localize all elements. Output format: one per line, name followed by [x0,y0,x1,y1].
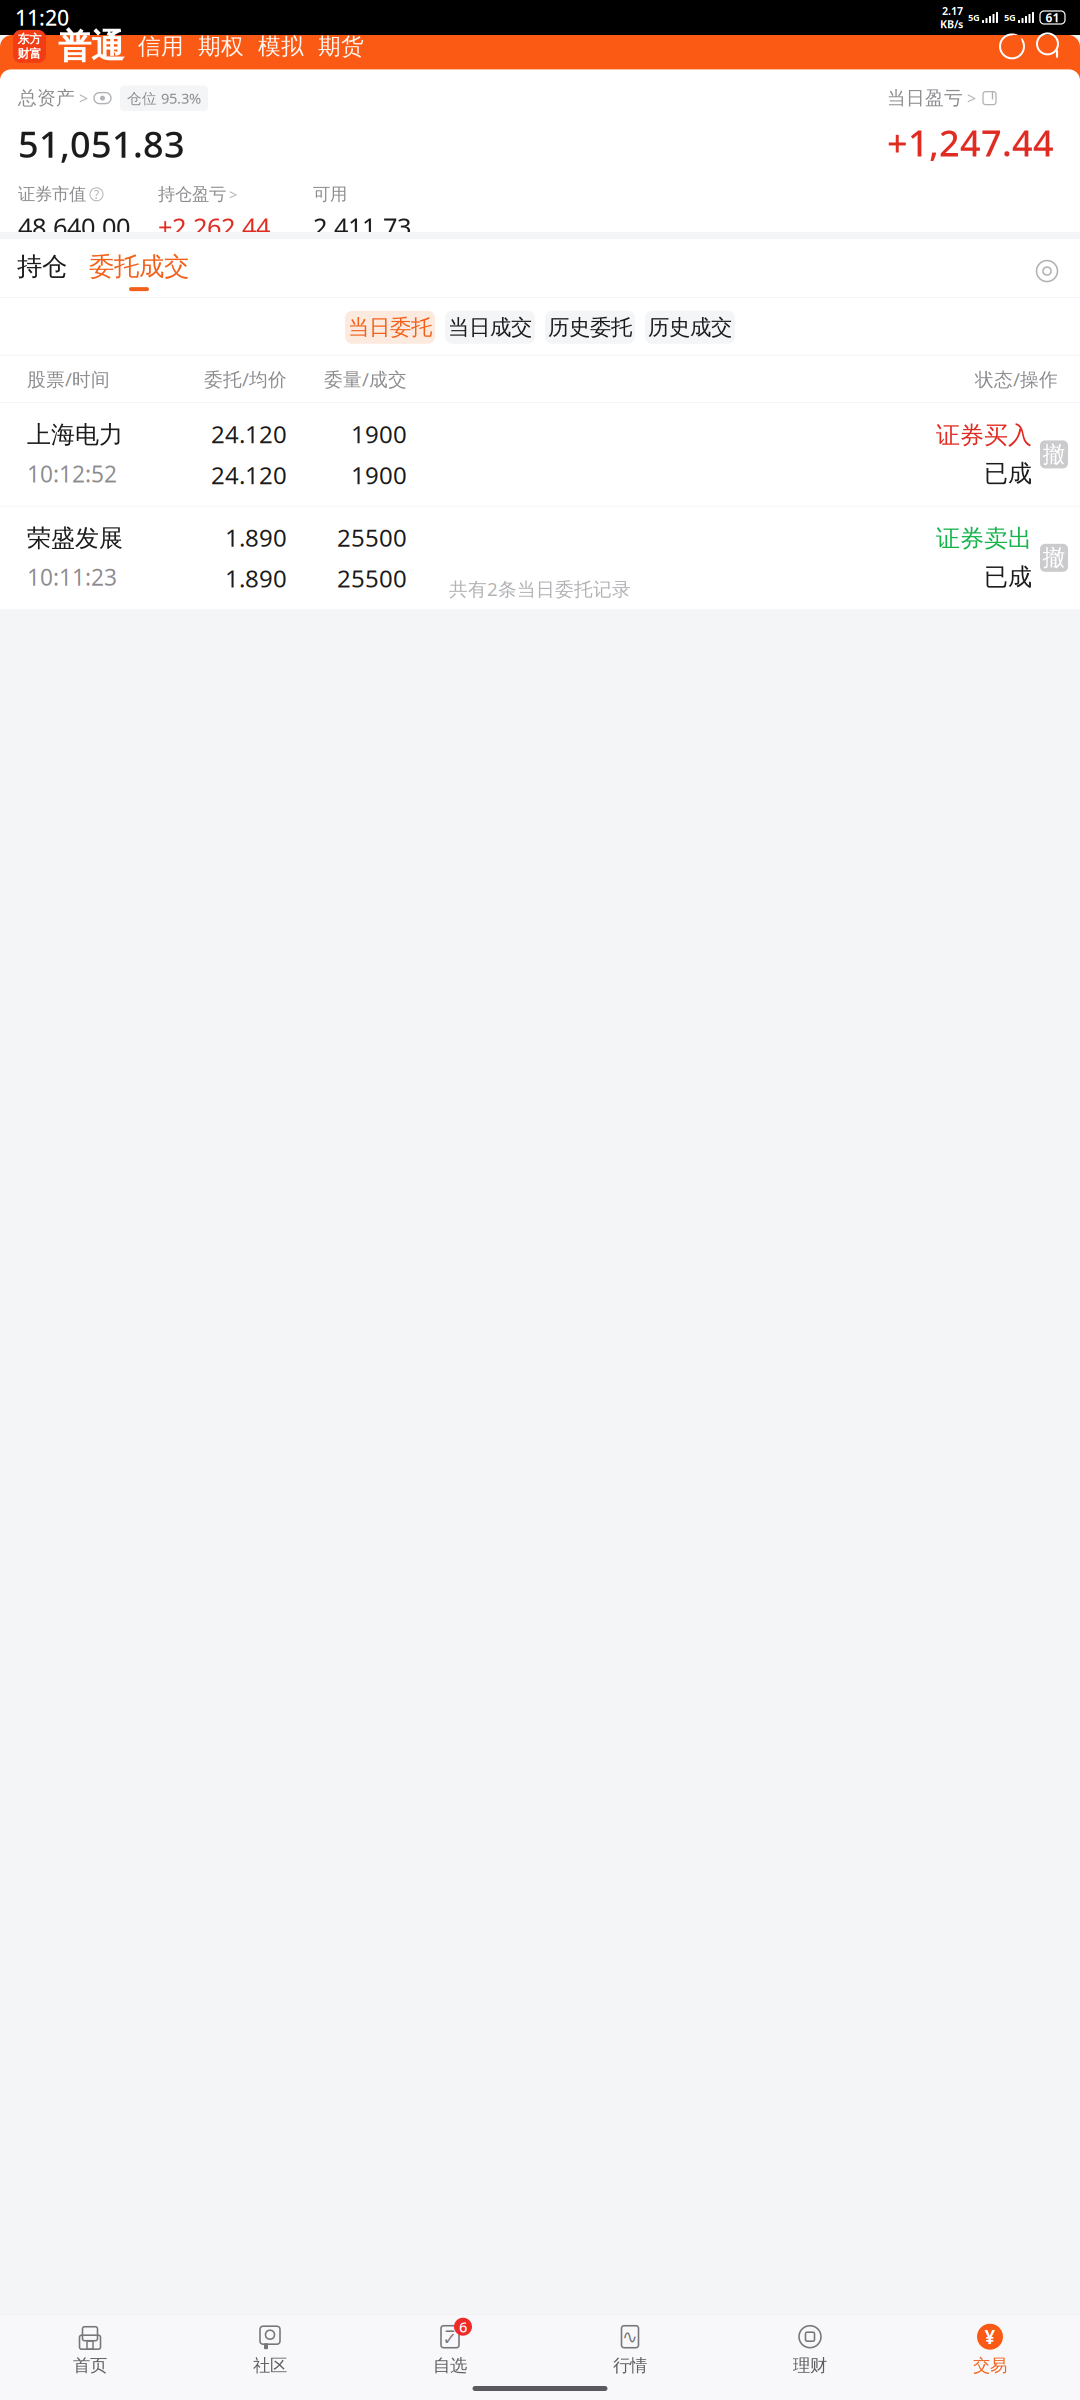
staticText: 25500 [337,562,407,594]
staticText: 上海电力 [27,420,123,450]
staticText: 仓位 95.3% [127,88,201,108]
staticText: 当日盈亏 [887,87,963,110]
button[interactable]: 荣盛发展 [0,506,1080,609]
staticText: 24.120 [211,418,287,450]
staticText: 持仓 [17,251,67,282]
staticText: 1900 [351,459,407,491]
button[interactable]: 社区 [180,2323,360,2376]
staticText: 当日委托 [348,314,432,340]
staticText: 状态/操作 [975,366,1058,391]
staticText: 自选 [433,2355,467,2376]
staticText: 普通 [58,26,124,67]
button[interactable]: 模拟 [244,32,304,60]
button[interactable]: ¥ [900,2323,1080,2376]
button[interactable]: 历史委托 [545,311,635,344]
staticText: 11:20 [15,3,69,32]
staticText: 理财 [793,2355,827,2376]
button[interactable]: 当日委托 [345,311,435,344]
staticText: 5G [968,11,980,24]
staticText: 交易 [973,2355,1007,2376]
staticText: 委量/成交 [324,366,407,391]
staticText: 24.120 [211,459,287,491]
staticText: 首页 [73,2355,107,2376]
staticText: 51,051.83 [18,120,185,168]
button[interactable]: 总资产 [18,85,208,111]
staticText: ∿ [622,2326,638,2347]
staticText: ? [94,186,99,202]
staticText: 2,411.73 [313,210,411,244]
button[interactable]: 理财 [720,2323,900,2376]
staticText: 模拟 [258,32,304,60]
button[interactable]: 首页 [0,2323,180,2376]
staticText: 证券卖出 [936,524,1032,553]
button[interactable]: 搜索 [1033,29,1067,63]
staticText: 委托成交 [89,251,189,282]
staticText: 历史成交 [648,314,732,340]
button[interactable]: 撤 [1040,544,1068,572]
staticText: 委托/均价 [204,366,287,391]
staticText: 6 [459,2317,467,2336]
staticText: 期货 [318,32,364,60]
staticText: 历史委托 [548,314,632,340]
button[interactable]: 信用 [124,32,184,60]
staticText: 1.890 [225,562,287,594]
staticText: 证券买入 [936,420,1032,450]
staticText: 期权 [198,32,244,60]
button[interactable]: 历史成交 [645,311,735,344]
button[interactable]: 当日盈亏 [887,87,998,110]
button[interactable]: 期权 [184,32,244,60]
staticText: 10:12:52 [27,459,117,489]
staticText: 荣盛发展 [27,523,123,553]
staticText: ¥ [984,2324,995,2349]
staticText: 信用 [138,32,184,60]
staticText: 当日成交 [448,314,532,340]
staticText: 社区 [253,2355,287,2376]
button[interactable]: 持仓 [17,251,67,291]
staticText: 股票/时间 [27,366,110,391]
button[interactable]: 设置 [1031,255,1063,287]
staticText: 48,640.00 [18,210,130,244]
button[interactable]: 刷新 [995,29,1029,63]
staticText: > [967,87,976,109]
button[interactable]: 持仓盈亏 [158,184,237,205]
staticText: 可用 [313,184,347,205]
staticText: 已成 [984,459,1032,488]
staticText: ✓ [442,2329,457,2349]
staticText: 共有2条当日委托记录 [449,576,631,601]
button[interactable]: 东方财富 [13,30,46,63]
staticText: +2,262.44 [158,210,270,244]
staticText: 东方 财富 [17,32,41,61]
button[interactable]: 撤 [1040,440,1068,468]
staticText: 25500 [337,521,407,553]
staticText: 61 [1045,9,1059,25]
staticText: 证券市值 [18,184,86,205]
staticText: > [229,185,237,204]
staticText: KB/s [940,17,963,31]
button[interactable]: 当日成交 [445,311,535,344]
staticText: 行情 [613,2355,647,2376]
staticText: +1,247.44 [887,119,1054,166]
button[interactable]: ∿ [540,2323,720,2376]
staticText: 1.890 [225,521,287,553]
button[interactable]: 上海电力 [0,403,1080,506]
staticText: 5G [1004,11,1016,24]
staticText: > [79,87,88,109]
button[interactable]: ✓ [360,2323,540,2376]
staticText: 1900 [351,418,407,450]
staticText: 总资产 [18,87,75,110]
staticText: 持仓盈亏 [158,184,226,205]
staticText: 撤 [1042,544,1065,572]
staticText: 已成 [984,562,1032,592]
staticText: 撤 [1042,440,1065,468]
button[interactable]: 普通 [46,26,124,67]
button[interactable]: 委托成交 [67,251,189,291]
button[interactable]: 期货 [304,32,364,60]
staticText: 2.17 [942,4,963,18]
staticText: 10:11:23 [27,562,117,592]
